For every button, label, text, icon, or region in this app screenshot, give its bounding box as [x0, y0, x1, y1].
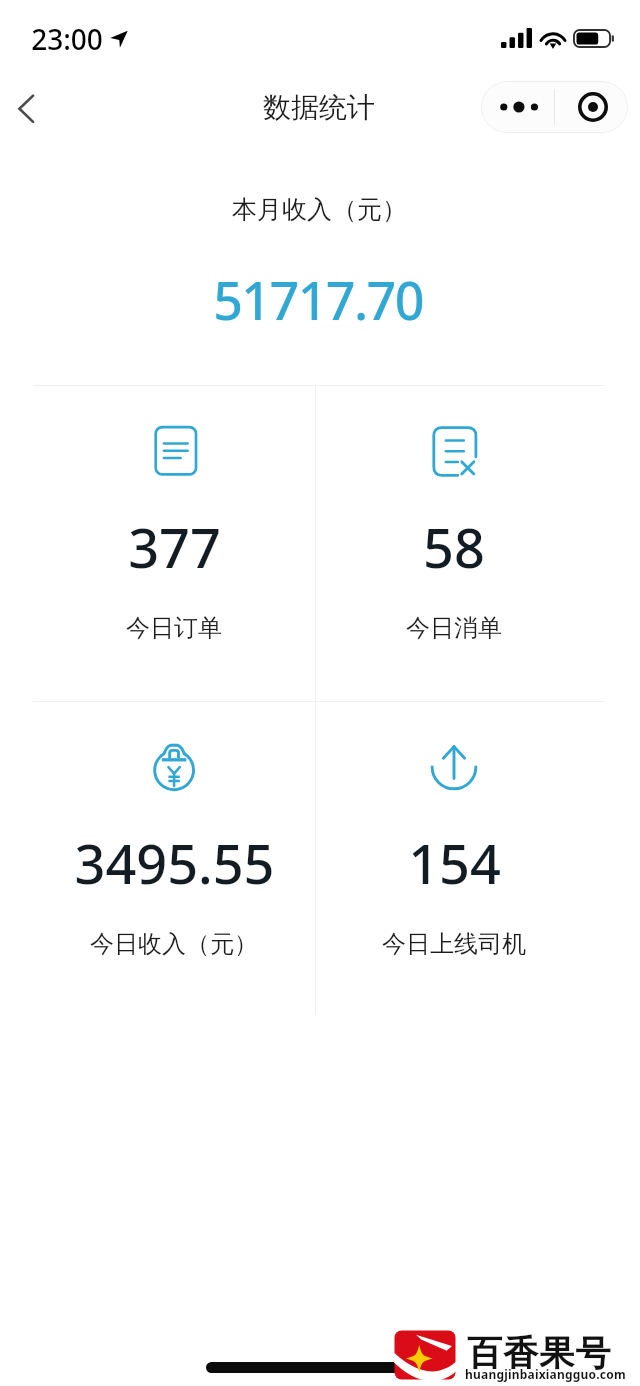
staticText: 377 [128, 510, 221, 584]
staticText: 数据统计 [263, 90, 375, 125]
button[interactable] [34, 701, 314, 1017]
staticText: 51717.70 [213, 264, 423, 335]
button[interactable]: Back [0, 78, 62, 140]
staticText: 百香果号 [467, 1331, 612, 1375]
staticText: 154 [408, 826, 501, 900]
staticText: 今日订单 [126, 613, 222, 643]
button[interactable] [34, 385, 314, 701]
staticText: huangjinbaixiangguo.com [465, 1366, 626, 1382]
staticText: 本月收入（元） [232, 194, 407, 225]
button[interactable]: More options [481, 81, 554, 133]
staticText: 今日上线司机 [382, 929, 526, 959]
staticText: 58 [423, 510, 485, 584]
staticText: 3495.55 [74, 826, 275, 900]
button[interactable] [314, 385, 594, 701]
button[interactable] [314, 701, 594, 1017]
staticText: 今日收入（元） [90, 929, 258, 959]
staticText: 今日消单 [406, 613, 502, 643]
staticText: 23:00 [31, 20, 103, 58]
button[interactable]: Close mini program [555, 81, 628, 133]
